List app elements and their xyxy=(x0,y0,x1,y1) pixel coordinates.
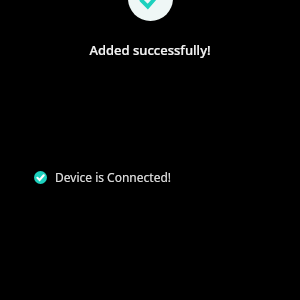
other: Success xyxy=(128,0,173,21)
staticText: Device is Connected! xyxy=(55,169,172,185)
button[interactable]: Device is Connected! xyxy=(30,166,176,188)
staticText: Added successfully! xyxy=(89,41,211,59)
